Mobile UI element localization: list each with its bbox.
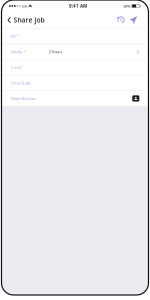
staticText: Phone Number — [10, 96, 36, 101]
staticText: Share Job — [13, 15, 44, 25]
staticText: 9:41 AM — [69, 3, 87, 9]
button[interactable]: Email Body — [1, 75, 148, 90]
button[interactable]: History — [115, 14, 127, 26]
staticText: E-mail — [10, 64, 21, 70]
button[interactable]: Phone Number — [1, 91, 148, 106]
button[interactable]: Validity * — [1, 44, 148, 59]
button[interactable]: Share Job — [1, 13, 44, 27]
staticText: GS — [22, 3, 27, 9]
staticText: 2 Hours — [48, 49, 62, 54]
staticText: 58% — [123, 3, 130, 9]
button[interactable]: E-mail — [1, 60, 148, 75]
staticText: Job * — [10, 33, 18, 39]
button[interactable]: Job * — [1, 28, 148, 44]
staticText: Validity * — [10, 49, 25, 54]
staticText: Email Body — [10, 80, 30, 85]
button[interactable]: Send — [127, 14, 139, 26]
